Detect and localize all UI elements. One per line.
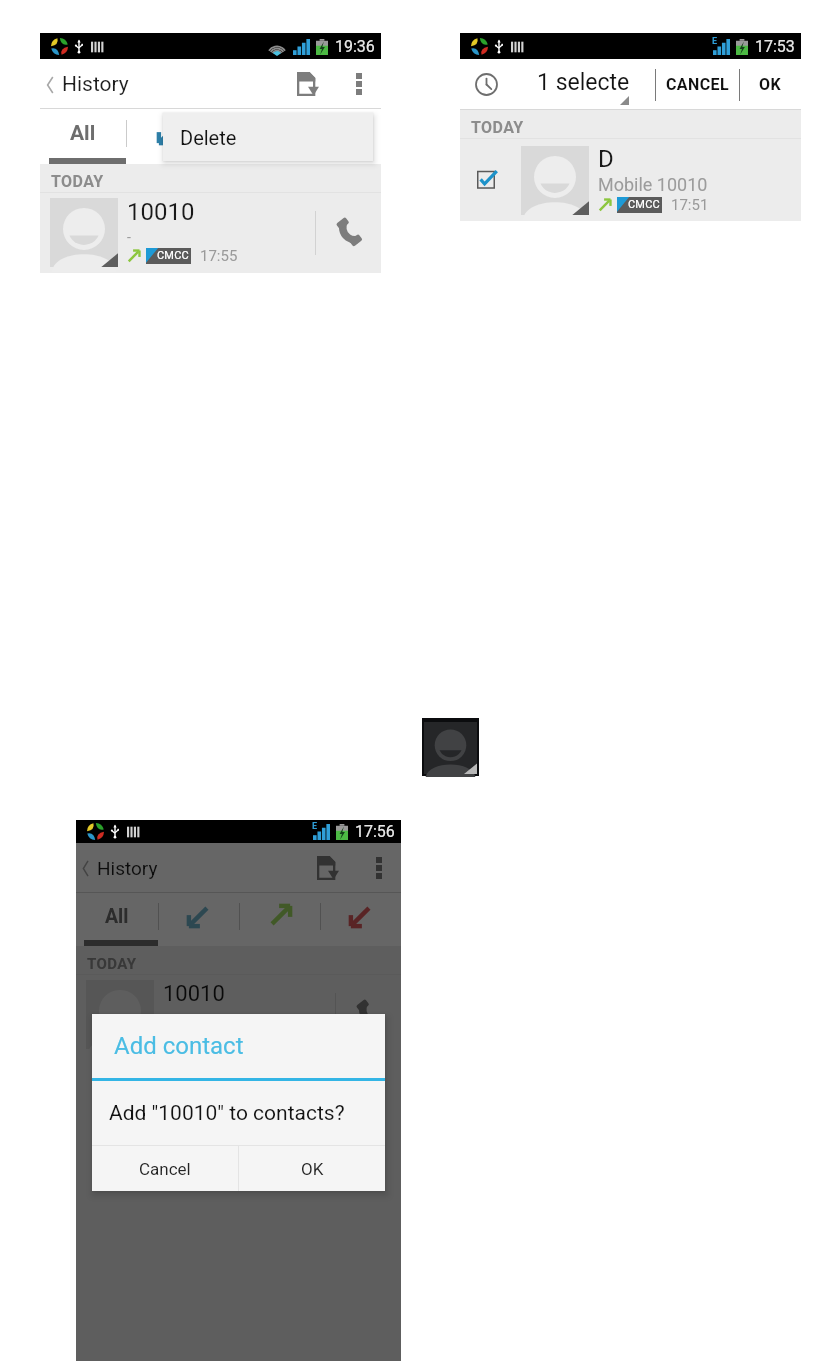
staticText: Mobile 10010 bbox=[598, 174, 708, 195]
button[interactable] bbox=[320, 893, 401, 946]
staticText: Cancel bbox=[139, 1159, 191, 1179]
button[interactable]: Export bbox=[307, 843, 349, 893]
button[interactable] bbox=[296, 109, 381, 164]
button[interactable]: Cancel bbox=[92, 1146, 238, 1191]
button[interactable]: Call bbox=[336, 975, 401, 1054]
button[interactable]: More options bbox=[343, 59, 375, 109]
staticText: CANCEL bbox=[666, 75, 730, 94]
staticText: E bbox=[312, 821, 318, 832]
staticText: TODAY bbox=[471, 118, 524, 137]
button[interactable]: All bbox=[76, 893, 158, 946]
staticText: All bbox=[105, 905, 129, 928]
staticText: CMCC bbox=[157, 249, 189, 262]
button[interactable] bbox=[158, 893, 239, 946]
staticText: 10010 bbox=[163, 981, 225, 1007]
staticText: TODAY bbox=[87, 955, 137, 973]
button[interactable]: 10010 bbox=[40, 193, 381, 272]
staticText: OK bbox=[759, 75, 782, 94]
staticText: TODAY bbox=[51, 172, 104, 191]
staticText: E bbox=[712, 36, 718, 47]
button[interactable]: History bbox=[43, 72, 131, 97]
staticText: 17:55 bbox=[236, 1028, 274, 1046]
button[interactable]: D bbox=[460, 139, 801, 221]
staticText: Add contact bbox=[114, 1032, 244, 1060]
button[interactable]: All bbox=[40, 109, 126, 164]
button[interactable]: 10010 bbox=[76, 975, 401, 1054]
button[interactable]: CANCEL bbox=[656, 59, 739, 110]
staticText: 17:56 bbox=[355, 822, 395, 841]
staticText: History bbox=[97, 857, 158, 879]
button[interactable] bbox=[239, 893, 320, 946]
button[interactable]: OK bbox=[239, 1146, 385, 1191]
staticText: - bbox=[127, 229, 131, 245]
button[interactable]: Delete bbox=[163, 113, 373, 161]
button[interactable] bbox=[126, 109, 211, 164]
button[interactable]: 1 selecte bbox=[512, 59, 655, 110]
staticText: 1 selecte bbox=[537, 69, 630, 96]
staticText: 10010 bbox=[127, 198, 195, 226]
staticText: CMCC bbox=[628, 198, 660, 211]
staticText: CMCC bbox=[193, 1030, 225, 1043]
button[interactable]: History bbox=[460, 59, 512, 110]
staticText: OK bbox=[301, 1159, 324, 1179]
staticText: - bbox=[163, 1010, 167, 1026]
staticText: Delete bbox=[180, 126, 237, 149]
staticText: Add "10010" to contacts? bbox=[109, 1101, 345, 1126]
staticText: All bbox=[70, 121, 96, 146]
staticText: 17:55 bbox=[200, 247, 238, 265]
button[interactable]: OK bbox=[740, 59, 801, 110]
staticText: 19:36 bbox=[335, 37, 375, 56]
staticText: 17:53 bbox=[755, 37, 795, 56]
staticText: 17:51 bbox=[671, 196, 709, 214]
button[interactable]: More options bbox=[363, 843, 395, 893]
button[interactable]: History bbox=[79, 857, 160, 879]
button[interactable]: Call bbox=[316, 193, 381, 272]
staticText: D bbox=[598, 145, 614, 173]
button[interactable]: Export bbox=[287, 59, 329, 109]
button[interactable] bbox=[211, 109, 296, 164]
staticText: History bbox=[62, 72, 129, 97]
